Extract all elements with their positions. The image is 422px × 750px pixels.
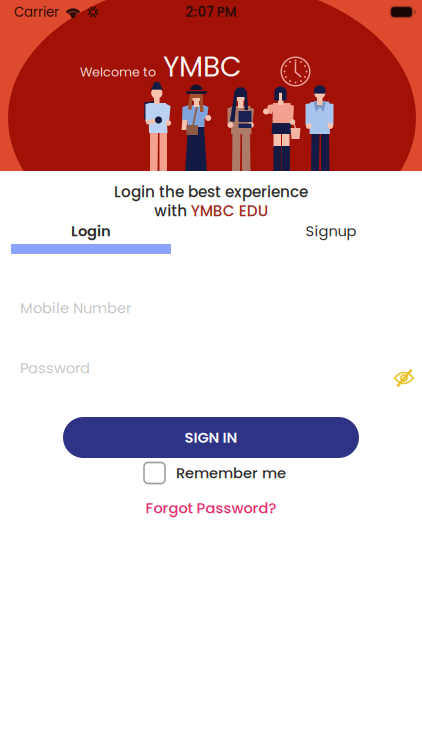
staticText: Signup [305,221,356,241]
button[interactable]: Remember me [144,462,286,484]
staticText: YMBC EDU [191,200,268,222]
button[interactable]: Signup [251,219,411,243]
staticText: Remember me [176,463,286,483]
staticText: SIGN IN [184,427,237,448]
button[interactable]: Forgot Password? [0,498,422,518]
staticText: Password [20,358,90,378]
button[interactable]: Password [0,346,393,390]
staticText: YMBC [163,47,242,86]
staticText: Mobile Number [20,298,131,318]
button[interactable]: SIGN IN [63,417,359,458]
staticText: Forgot Password? [145,498,276,518]
staticText: 2:07 PM [185,3,236,21]
staticText: Login [71,221,111,241]
staticText: Welcome to [80,63,156,81]
staticText: Login the best experience [114,181,308,203]
button[interactable]: Mobile Number [0,286,400,330]
staticText: with [154,200,187,222]
button[interactable]: Login [11,219,171,243]
staticText: Carrier [14,3,59,21]
